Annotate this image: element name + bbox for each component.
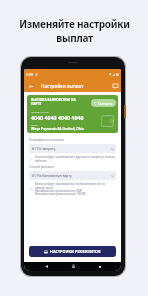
staticText: Сменить	[98, 101, 113, 106]
button[interactable]: Back	[27, 81, 34, 91]
staticText: Периодичность выплат	[29, 138, 65, 142]
staticText: БАНК	[31, 123, 38, 126]
staticText: 4040 4040 4040 4040	[31, 114, 84, 121]
button[interactable]: Home	[68, 262, 78, 271]
button[interactable]: Recent apps	[95, 262, 105, 271]
staticText: Способ выплаты	[29, 165, 54, 169]
staticText: Настройки выплат	[41, 83, 84, 89]
button[interactable]: Back	[41, 262, 51, 271]
staticText: #1 На банковскую карту	[32, 173, 72, 178]
staticText: НОМЕР КАРТЫ	[31, 110, 49, 113]
button[interactable]: НАСТРОЙКИ РЕКВИЗИТОВ	[29, 246, 116, 257]
button[interactable]: #1 На банковскую карту	[32, 171, 114, 180]
staticText: Wirye Payments SA Limited, Ohio	[31, 127, 84, 131]
staticText: Выплаты будут производиться вручную по з…	[35, 155, 115, 162]
staticText: НАСТРОЙКИ РЕКВИЗИТОВ	[50, 249, 101, 254]
staticText: 7:33	[26, 72, 33, 77]
button[interactable]: Support chat	[111, 81, 119, 91]
staticText: #1 По запросу	[32, 146, 56, 151]
staticText: Выплаты будут производиться на банковски…	[35, 182, 106, 195]
staticText: ВЫПЛАТА БАНКОВСКОЙ НА КАРТУ	[31, 98, 76, 106]
staticText: Изменяйте настройки выплат	[19, 17, 130, 45]
button[interactable]: #1 По запросу	[32, 144, 114, 153]
button[interactable]: Сменить	[94, 99, 113, 107]
